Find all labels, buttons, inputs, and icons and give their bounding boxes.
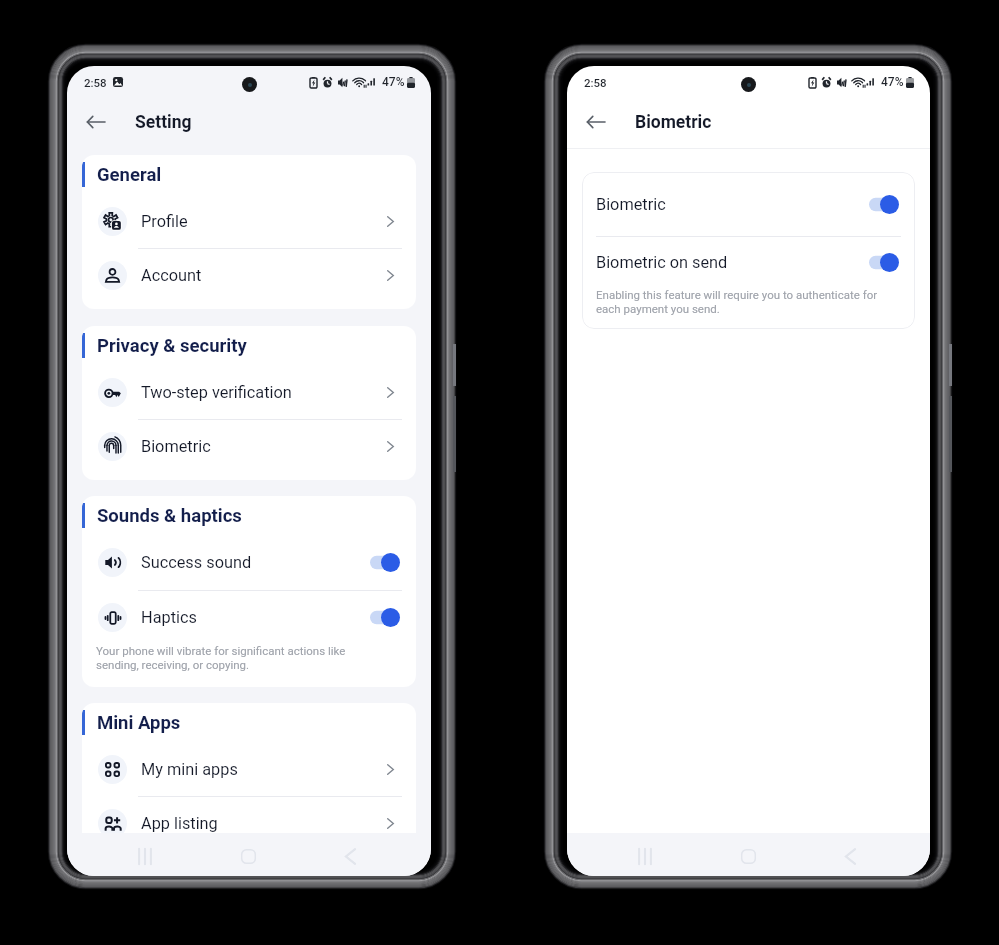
staticText: Account: [141, 266, 202, 285]
staticText: 2:58: [584, 76, 607, 89]
staticText: Privacy & security: [97, 335, 247, 357]
staticText: 47%: [382, 75, 405, 89]
staticText: Sounds & haptics: [97, 505, 242, 527]
button[interactable]: Two-step verification: [82, 365, 416, 419]
button[interactable]: App listing: [82, 797, 416, 850]
button[interactable]: Biometric: [582, 172, 915, 236]
button[interactable]: Toggle: [869, 195, 899, 214]
staticText: Biometric on send: [596, 253, 728, 272]
staticText: Biometric: [635, 112, 712, 133]
button[interactable]: Toggle: [370, 608, 400, 627]
staticText: Your phone will vibrate for significant …: [96, 644, 364, 672]
button[interactable]: Biometric: [82, 420, 416, 473]
button[interactable]: My mini apps: [82, 742, 416, 796]
staticText: Setting: [135, 112, 192, 133]
staticText: App listing: [141, 814, 218, 833]
staticText: 2:58: [84, 76, 107, 89]
staticText: Haptics: [141, 608, 197, 627]
button[interactable]: Biometric on send: [582, 237, 915, 288]
button[interactable]: Back: [583, 109, 609, 135]
button[interactable]: Recents: [628, 839, 662, 873]
staticText: Profile: [141, 212, 188, 231]
staticText: Biometric: [596, 195, 666, 214]
button[interactable]: Success sound: [82, 535, 416, 590]
staticText: Two-step verification: [141, 383, 292, 402]
button[interactable]: Home: [731, 839, 765, 873]
button[interactable]: Home: [231, 839, 265, 873]
button[interactable]: Haptics: [82, 591, 416, 644]
staticText: Enabling this feature will require you t…: [596, 288, 900, 316]
button[interactable]: Account: [82, 249, 416, 302]
button[interactable]: Back: [333, 839, 367, 873]
button[interactable]: Recents: [128, 839, 162, 873]
staticText: My mini apps: [141, 760, 238, 779]
staticText: Success sound: [141, 553, 252, 572]
button[interactable]: Profile: [82, 194, 416, 248]
staticText: General: [97, 164, 162, 186]
staticText: Biometric: [141, 437, 211, 456]
staticText: Mini Apps: [97, 712, 181, 734]
button[interactable]: Back: [83, 109, 109, 135]
button[interactable]: Toggle: [869, 253, 899, 272]
button[interactable]: Toggle: [370, 553, 400, 572]
button[interactable]: Back: [833, 839, 867, 873]
staticText: 47%: [881, 75, 904, 89]
